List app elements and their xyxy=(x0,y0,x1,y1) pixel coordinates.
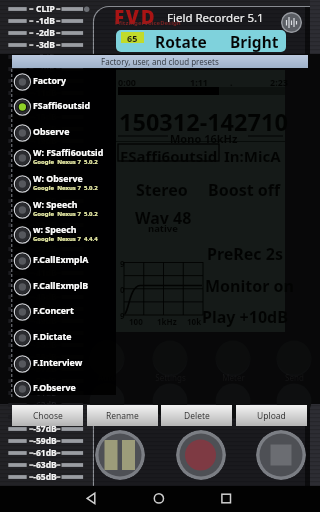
button[interactable]: W: FSaffi6outsid xyxy=(12,146,116,170)
staticText: F.Interview xyxy=(33,357,83,369)
staticText: -65dB xyxy=(33,471,57,483)
staticText: -57dB xyxy=(33,423,57,435)
staticText: -61dB xyxy=(33,447,57,459)
staticText: Google Nexus 7 5.0.2 xyxy=(33,184,98,192)
staticText: Monitor on xyxy=(205,275,294,297)
staticText: -35dB xyxy=(33,231,57,243)
button[interactable]: Choose xyxy=(12,405,83,426)
staticText: Meter xyxy=(222,372,245,383)
staticText: F.CallExmplB xyxy=(33,280,89,292)
staticText: -5dB xyxy=(36,51,55,63)
button[interactable]: F.Observe xyxy=(12,377,116,401)
staticText: -63dB xyxy=(33,459,57,471)
button[interactable]: Factory xyxy=(12,70,116,94)
staticText: Observe xyxy=(33,126,70,138)
staticText: -59dB xyxy=(33,375,57,387)
button[interactable]: Factory, user, and cloud presets xyxy=(12,55,308,68)
staticText: 1:11 xyxy=(190,76,208,88)
staticText: -25dB xyxy=(33,171,57,183)
button[interactable]: Home xyxy=(145,486,173,512)
button[interactable]: Delete xyxy=(161,405,232,426)
staticText: In:MicA xyxy=(224,146,281,166)
staticText: -3dB xyxy=(36,39,55,51)
staticText: -27dB xyxy=(33,183,57,195)
button[interactable]: Rotate xyxy=(149,30,213,52)
button[interactable]: Pause xyxy=(95,430,145,480)
staticText: -65dB xyxy=(33,411,57,423)
staticText: Wav 48 xyxy=(135,207,192,229)
staticText: Choose xyxy=(33,410,63,422)
staticText: FVD xyxy=(114,4,157,30)
button[interactable]: Stop xyxy=(256,430,306,480)
staticText: -31dB xyxy=(33,207,57,219)
staticText: 9 xyxy=(120,310,125,321)
staticText: -21dB xyxy=(33,147,57,159)
staticText: -39dB xyxy=(33,255,57,267)
staticText: W: Speech xyxy=(33,199,78,211)
staticText: Rename xyxy=(106,410,139,422)
staticText: -61dB xyxy=(33,387,57,399)
staticText: Mono 16kHz xyxy=(170,131,238,146)
button[interactable]: Back xyxy=(77,486,105,512)
button[interactable]: w: Speech xyxy=(12,223,116,247)
staticText: FSaffi6outsid xyxy=(120,146,218,166)
button[interactable]: Recents xyxy=(212,486,240,512)
staticText: F.CallExmplA xyxy=(33,254,89,266)
staticText: CLIP xyxy=(36,3,55,15)
button[interactable]: 65 xyxy=(121,32,144,43)
button[interactable]: F.CallExmplB xyxy=(12,275,116,299)
staticText: 100 xyxy=(129,316,143,327)
button[interactable]: Upload xyxy=(236,405,307,426)
staticText: Upload xyxy=(257,410,286,422)
button[interactable]: Record xyxy=(176,430,226,480)
staticText: -57dB xyxy=(33,363,57,375)
button[interactable]: F.CallExmplA xyxy=(12,249,116,273)
staticText: Factory, user, and cloud presets xyxy=(101,56,219,67)
staticText: Bright xyxy=(230,31,279,52)
button[interactable]: W: Observe xyxy=(12,172,116,196)
staticText: F.Dictate xyxy=(33,331,72,343)
staticText: -17dB xyxy=(33,123,57,135)
button[interactable]: F.Concert xyxy=(12,300,116,324)
staticText: -2dB xyxy=(36,27,55,39)
staticText: Stereo xyxy=(136,179,188,201)
staticText: -59dB xyxy=(33,435,57,447)
staticText: F.Concert xyxy=(33,305,74,317)
button[interactable]: Observe xyxy=(12,121,116,145)
staticText: 150312-142710 xyxy=(119,106,288,138)
staticText: w: Speech xyxy=(33,224,77,236)
button[interactable]: FSaffi6outsid xyxy=(12,95,116,119)
button[interactable]: Bright xyxy=(223,30,285,52)
staticText: -13dB xyxy=(33,99,57,111)
staticText: Boost off xyxy=(208,179,281,201)
staticText: W: FSaffi6outsid xyxy=(33,147,104,159)
staticText: -29dB xyxy=(33,195,57,207)
staticText: 10k xyxy=(187,316,202,327)
staticText: W: Observe xyxy=(33,173,83,185)
button[interactable] xyxy=(85,340,129,404)
button[interactable]: F.Dictate xyxy=(12,326,116,350)
button[interactable]: F.Interview xyxy=(12,352,116,376)
staticText: Field Recorder 5.1 xyxy=(167,10,264,26)
staticText: 9 xyxy=(120,258,125,269)
staticText: 0:00 xyxy=(118,76,136,88)
staticText: Google Nexus 7 4.4.4 xyxy=(33,235,98,243)
staticText: -53dB xyxy=(33,339,57,351)
staticText: Google Nexus 7 5.0.2 xyxy=(33,210,98,218)
staticText: -23dB xyxy=(33,159,57,171)
staticText: -47dB xyxy=(33,303,57,315)
staticText: -63dB xyxy=(33,399,57,411)
staticText: -7dB xyxy=(36,63,55,75)
staticText: -55dB xyxy=(33,351,57,363)
staticText: Google Nexus 7 5.0.2 xyxy=(33,158,98,166)
button[interactable]: Rename xyxy=(87,405,158,426)
button[interactable]: Audio waveform settings xyxy=(281,12,302,33)
button[interactable]: W: Speech xyxy=(12,198,116,222)
